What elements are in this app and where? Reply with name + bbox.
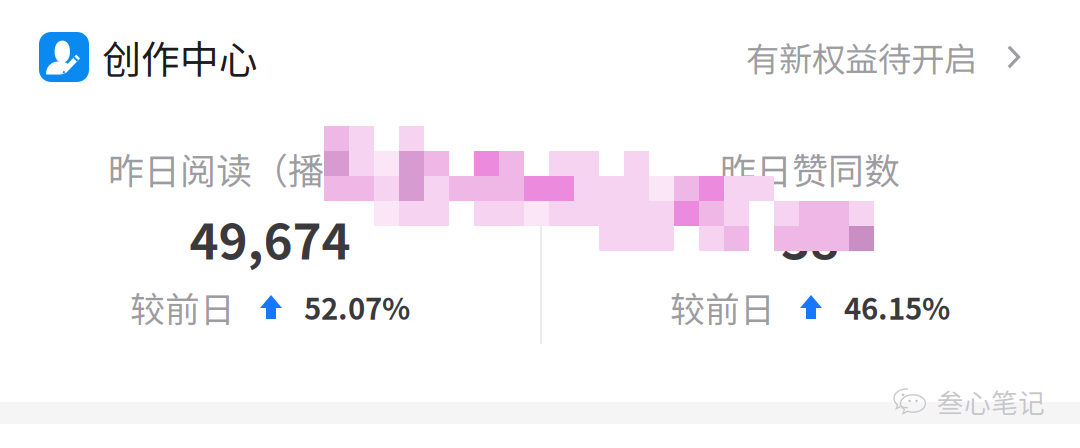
staticText: 昨日阅读（播放）量 <box>108 142 432 194</box>
button[interactable]: 昨日阅读（播放）量 <box>0 147 540 328</box>
staticText: 创作中心 <box>102 29 258 85</box>
staticText: 叁心笔记 <box>937 382 1045 421</box>
staticText: 较前日 <box>670 282 775 332</box>
staticText: 有新权益待开启 <box>746 33 977 81</box>
staticText: 49,674 <box>189 202 350 274</box>
button[interactable]: 创作中心 <box>39 29 258 85</box>
staticText: 52.07% <box>304 286 410 328</box>
staticText: 昨日赞同数 <box>720 142 900 194</box>
staticText: 46.15% <box>844 286 950 328</box>
staticText: 较前日 <box>130 282 235 332</box>
staticText: 38 <box>781 202 839 274</box>
button[interactable]: 昨日赞同数 <box>540 147 1080 328</box>
button[interactable]: 有新权益待开启 <box>746 33 1021 81</box>
